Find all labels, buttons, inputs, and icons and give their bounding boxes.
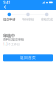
- staticText: 9:41: [3, 0, 10, 5]
- button[interactable]: 返回首页: [3, 54, 53, 61]
- staticText: 1-3个工作日: [3, 42, 20, 46]
- staticText: 审核中: [3, 33, 15, 39]
- button[interactable]: Back: [2, 4, 9, 10]
- staticText: 资料已提交审核: [3, 38, 24, 41]
- staticText: 返回首页: [20, 55, 36, 60]
- staticText: 提交申请: [3, 17, 15, 21]
- staticText: 审核完成: [41, 17, 53, 21]
- staticText: 等待审核: [22, 17, 34, 21]
